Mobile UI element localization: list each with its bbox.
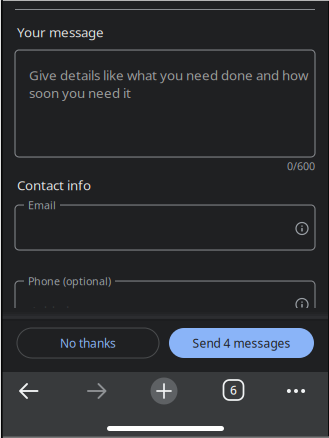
staticText: Your message <box>17 23 104 41</box>
button[interactable]: New tab <box>150 377 177 404</box>
button[interactable]: Forward <box>87 383 106 399</box>
staticText: 0/600 <box>287 159 315 173</box>
button[interactable]: More options <box>286 383 305 399</box>
staticText: No thanks <box>60 335 116 351</box>
staticText: Email <box>28 198 56 212</box>
button[interactable]: No thanks <box>17 328 159 358</box>
staticText: 6 <box>230 382 237 398</box>
button[interactable]: Tabs <box>223 380 243 400</box>
button[interactable]: Send 4 messages <box>169 328 314 358</box>
staticText: Contact info <box>17 176 91 194</box>
staticText: Give details like what you need done and… <box>29 66 308 102</box>
staticText: Send 4 messages <box>192 335 290 351</box>
staticText: Add phone <box>30 302 98 320</box>
button[interactable]: Back <box>19 383 38 399</box>
staticText: Phone (optional) <box>28 274 111 288</box>
